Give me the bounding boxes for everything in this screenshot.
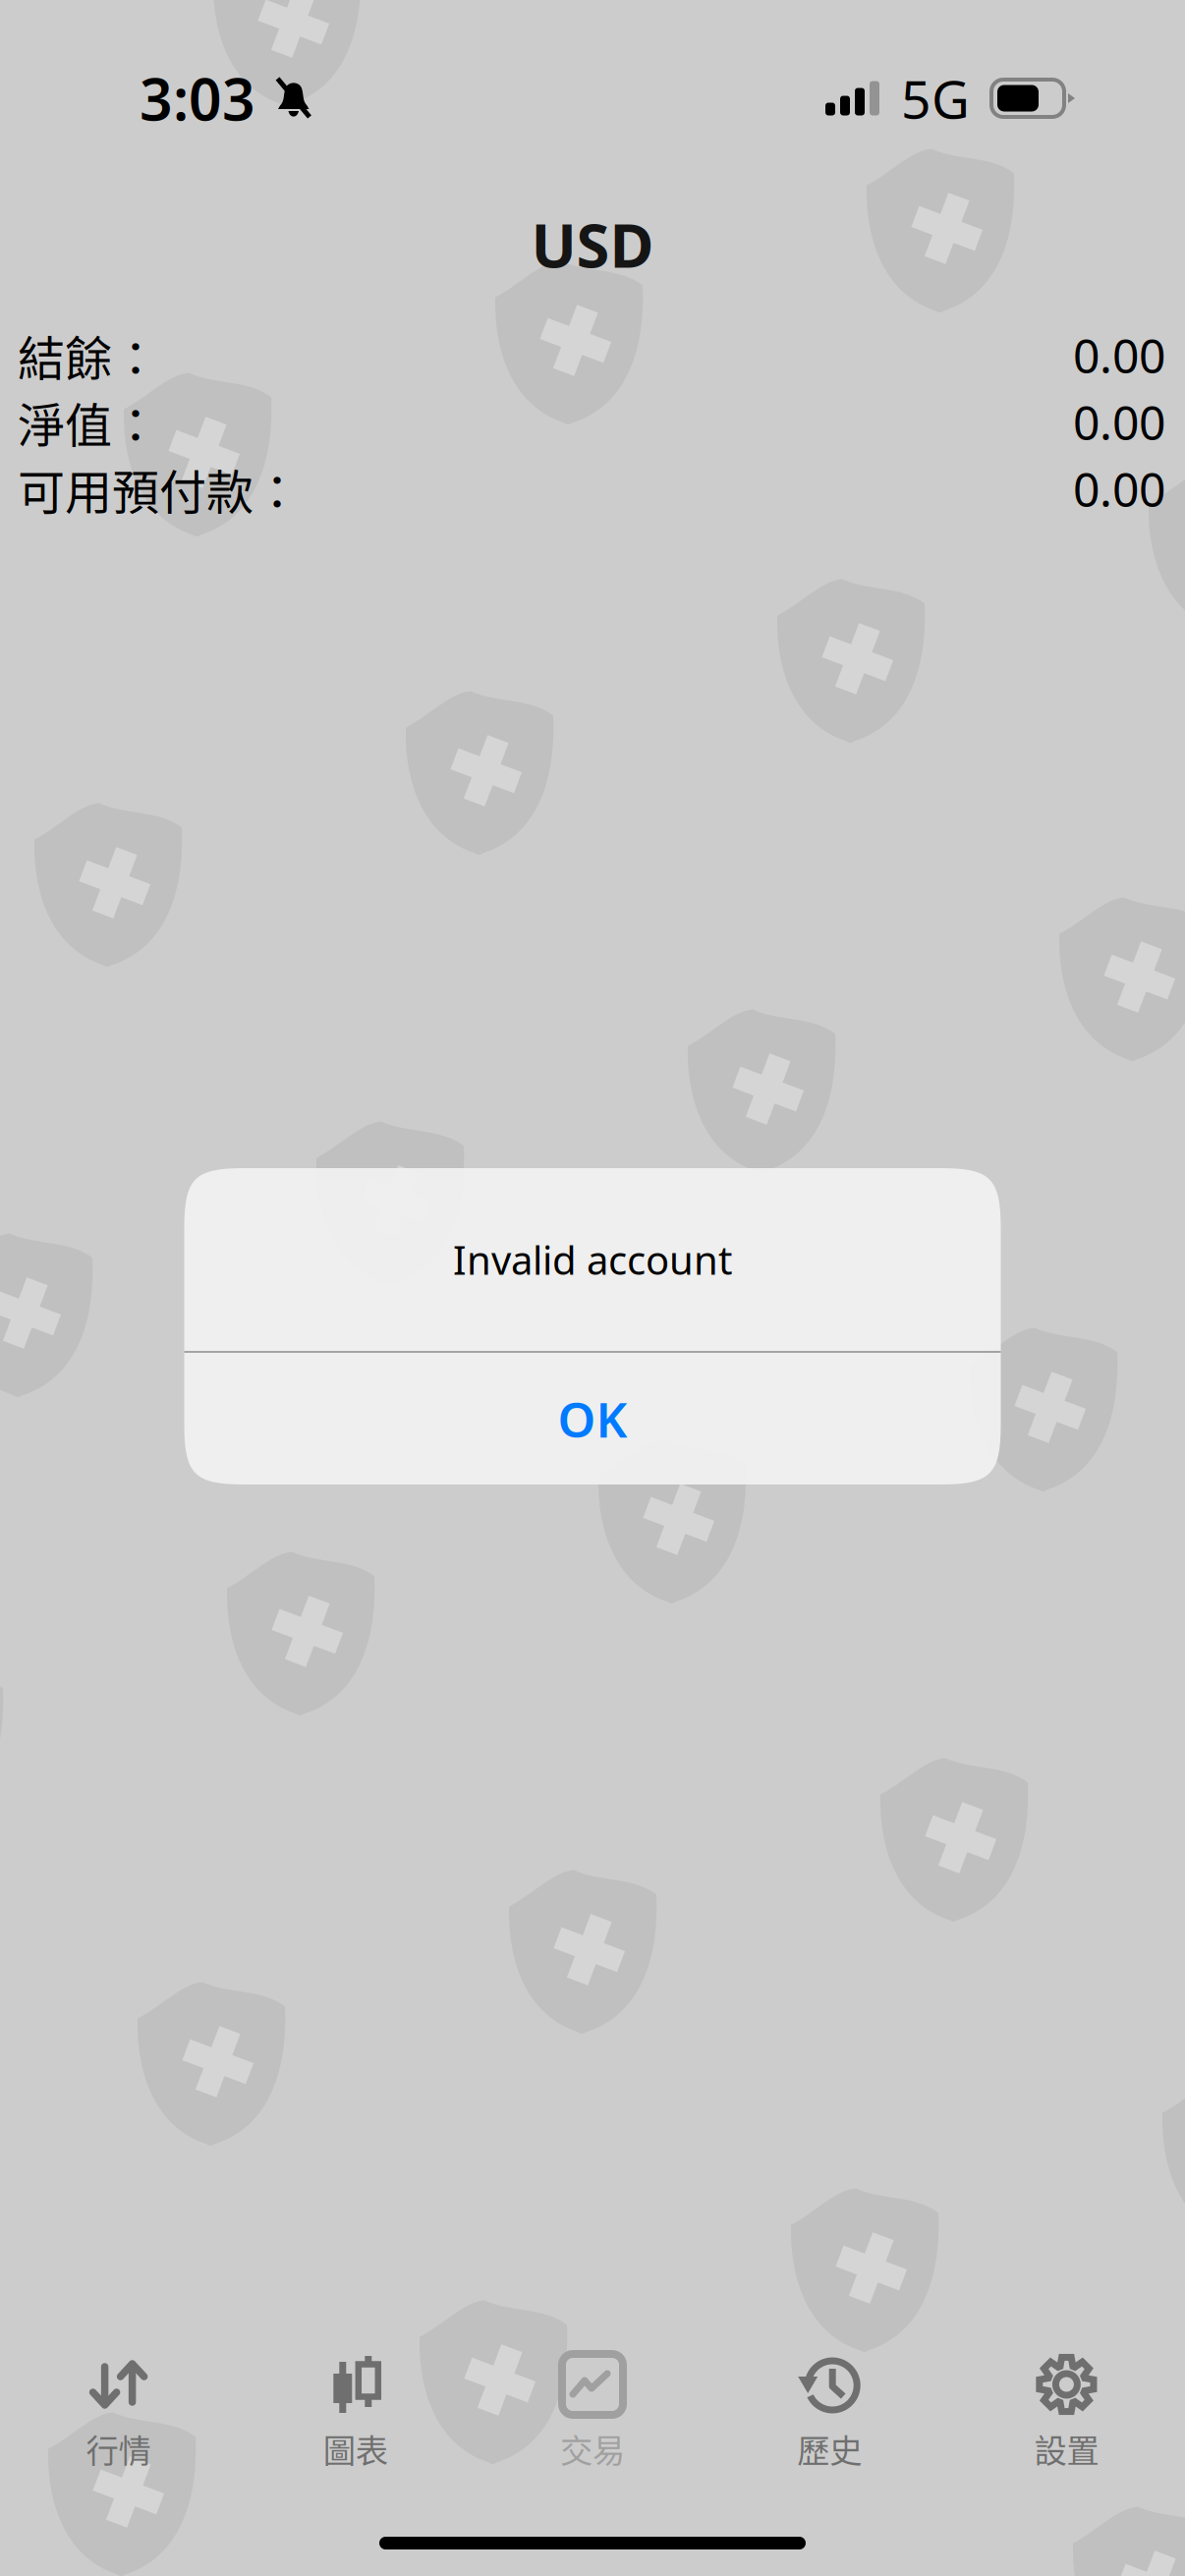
button[interactable]: OK <box>184 1353 1001 1484</box>
staticText: 行情 <box>86 2425 151 2472</box>
button[interactable]: 設置 <box>948 2353 1185 2510</box>
staticText: 設置 <box>1034 2425 1099 2472</box>
button[interactable]: 行情 <box>0 2353 237 2510</box>
staticText: 可用預付款： <box>18 455 301 523</box>
staticText: Invalid account <box>453 1233 732 1286</box>
staticText: 圖表 <box>323 2425 388 2472</box>
staticText: 歷史 <box>797 2425 862 2472</box>
staticText: 0.00 <box>1073 324 1165 386</box>
staticText: 結餘： <box>18 321 159 389</box>
staticText: 淨值： <box>18 388 159 456</box>
button[interactable]: 交易 <box>474 2353 711 2510</box>
staticText: 5G <box>901 63 970 133</box>
staticText: 0.00 <box>1073 457 1165 520</box>
staticText: 交易 <box>560 2425 625 2472</box>
button[interactable]: 圖表 <box>237 2353 474 2510</box>
staticText: OK <box>558 1386 627 1451</box>
button[interactable]: 歷史 <box>711 2353 948 2510</box>
staticText: 3:03 <box>140 60 255 136</box>
staticText: USD <box>531 204 654 284</box>
staticText: 0.00 <box>1073 391 1165 453</box>
